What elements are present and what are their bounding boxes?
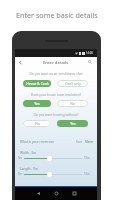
- staticText: No: [35, 121, 40, 126]
- staticText: Yes: [70, 121, 76, 126]
- button[interactable]: Feet: [76, 140, 83, 144]
- button[interactable]: Back: [34, 189, 43, 198]
- button[interactable]: Home: [52, 189, 61, 198]
- button[interactable]: No: [23, 120, 51, 127]
- staticText: Yes: [34, 101, 40, 106]
- staticText: 14:26: [86, 51, 93, 55]
- staticText: House & Cook: [26, 81, 49, 86]
- staticText: 10m: [84, 156, 90, 160]
- button[interactable]: Cook only: [57, 80, 88, 87]
- staticText: What is your room size: [20, 140, 55, 144]
- staticText: Enter some basic details: [16, 10, 98, 20]
- button[interactable]: Search: [87, 59, 93, 65]
- button[interactable]: Meter: [85, 140, 94, 144]
- button[interactable]: Yes: [23, 100, 51, 107]
- staticText: Enter details: [43, 60, 69, 66]
- staticText: Width - 5m: [20, 151, 37, 155]
- staticText: Do you want heating without?: [15, 113, 97, 117]
- staticText: Do you want an air conditioner that: [15, 72, 97, 76]
- staticText: No: [70, 101, 75, 106]
- staticText: 5m: [18, 156, 23, 160]
- staticText: 5m: [18, 172, 23, 176]
- staticText: Length - 5m: [20, 167, 39, 171]
- staticText: Does your house have insulation?: [15, 93, 97, 97]
- staticText: 10m: [84, 172, 90, 176]
- button[interactable]: House & Cook: [23, 80, 51, 87]
- button[interactable]: No: [57, 100, 88, 107]
- button[interactable]: Yes: [57, 120, 88, 127]
- button[interactable]: Slider handle: [47, 156, 52, 161]
- staticText: Cook only: [65, 81, 81, 86]
- button[interactable]: Back: [17, 59, 23, 65]
- button[interactable]: Recent apps: [70, 189, 79, 198]
- button[interactable]: Slider handle: [47, 172, 52, 177]
